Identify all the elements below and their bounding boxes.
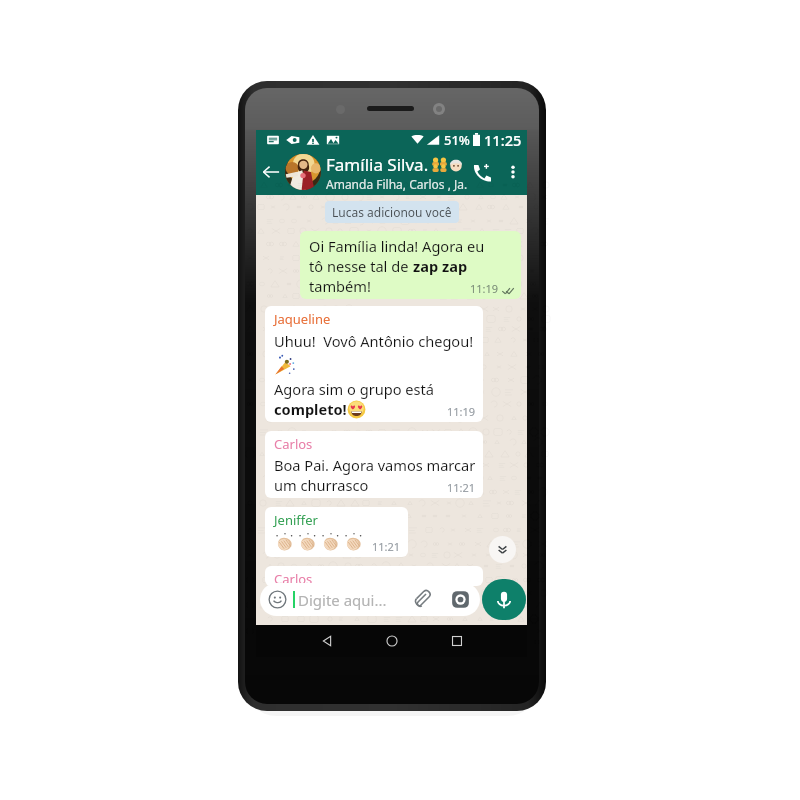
staticText: Família Silva.	[326, 153, 429, 176]
staticText: 11:25	[484, 130, 522, 149]
staticText: 11:19	[447, 404, 476, 419]
button[interactable]: Carlos	[265, 431, 483, 498]
button[interactable]: Oi Família linda! Agora eu	[300, 231, 521, 299]
button[interactable]: Jaqueline	[265, 306, 483, 422]
staticText: um churrasco	[274, 475, 369, 495]
staticText: 11:19	[470, 281, 499, 296]
staticText: Digite aqui...	[298, 590, 387, 610]
button[interactable]: Recents	[440, 625, 474, 657]
staticText: Oi Família linda! Agora eu	[309, 236, 485, 256]
button[interactable]: Família Silva.	[326, 153, 467, 192]
staticText: completo!	[274, 399, 347, 419]
button[interactable]: Attach	[413, 589, 434, 610]
button[interactable]: Group photo	[285, 154, 321, 190]
staticText: Jeniffer	[274, 511, 318, 529]
staticText: tô nesse tal de	[309, 256, 413, 276]
button[interactable]: Video call	[467, 157, 497, 187]
button[interactable]: Back	[257, 158, 285, 186]
button[interactable]: Carlos	[265, 566, 483, 586]
button[interactable]: Camera	[451, 590, 470, 609]
staticText: 11:21	[372, 539, 401, 554]
staticText: também!	[309, 276, 371, 296]
staticText: Carlos	[274, 570, 313, 586]
staticText: Lucas adicionou você	[332, 204, 452, 220]
staticText: zap zap	[413, 256, 468, 276]
staticText: Carlos	[274, 435, 313, 453]
button[interactable]: Lucas adicionou você	[332, 204, 452, 220]
staticText: 11:21	[447, 480, 476, 495]
button[interactable]: Digite aqui...	[260, 583, 480, 616]
staticText: Uhuu! Vovô Antônio chegou!	[274, 331, 474, 351]
staticText: Boa Pai. Agora vamos marcar	[274, 455, 476, 475]
staticText: Amanda Filha, Carlos , Ja...	[326, 176, 467, 192]
staticText: Jaqueline	[274, 310, 331, 328]
staticText: 51%	[444, 131, 470, 149]
button[interactable]: More options	[499, 158, 527, 186]
staticText: Agora sim o grupo está	[274, 379, 434, 399]
button[interactable]: Scroll to bottom	[489, 536, 516, 563]
button[interactable]: Back	[310, 625, 344, 657]
button[interactable]: Home	[375, 625, 409, 657]
button[interactable]: Voice message	[482, 579, 526, 620]
button[interactable]: Jeniffer	[265, 507, 408, 557]
